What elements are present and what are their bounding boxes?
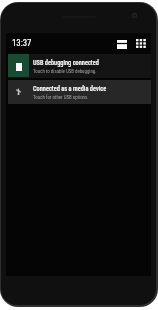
staticText: Touch to disable USB debugging. (33, 68, 97, 74)
staticText: Connected as a media device (33, 85, 107, 92)
button[interactable]: Recent apps (117, 40, 127, 49)
staticText: 13:37 (12, 38, 32, 48)
button[interactable]: USB debugging connected (8, 54, 151, 78)
staticText: Touch for other USB options. (33, 94, 89, 100)
staticText: USB debugging connected (33, 59, 99, 66)
button[interactable]: Connected as a media device (8, 80, 151, 104)
button[interactable]: All apps (136, 39, 147, 49)
